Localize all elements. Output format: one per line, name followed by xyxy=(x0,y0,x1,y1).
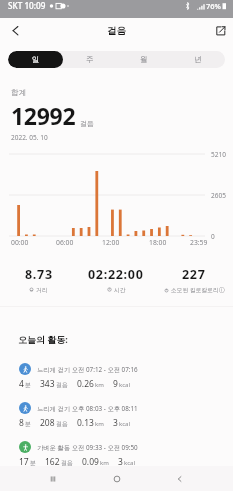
staticText: 12992 xyxy=(11,100,76,131)
staticText: 주 xyxy=(86,55,94,64)
staticText: 합계 xyxy=(11,88,26,97)
staticText: 걸음 xyxy=(56,381,68,389)
staticText: 02:22:00 xyxy=(88,266,144,283)
staticText: 년 xyxy=(194,55,202,64)
staticText: 9 xyxy=(113,378,118,390)
staticText: 17 xyxy=(19,456,29,468)
staticText: 2022. 05. 10 xyxy=(11,133,48,142)
button[interactable]: Open in new window xyxy=(211,20,229,38)
button[interactable]: 느리게 걷기 오후 08:03 - 오후 08:11 xyxy=(0,402,233,429)
staticText: 06:00 xyxy=(56,238,74,247)
staticText: kcal xyxy=(119,381,130,389)
staticText: km xyxy=(95,420,104,428)
staticText: 3 xyxy=(113,417,118,429)
button[interactable]: 느리게 걷기 오전 07:12 - 오전 07:16 xyxy=(0,363,233,390)
staticText: 느리게 걷기 오후 08:03 - 오후 08:11 xyxy=(37,404,138,413)
staticText: 4 xyxy=(19,378,24,390)
staticText: 걸음 xyxy=(61,459,73,467)
staticText: 18:00 xyxy=(149,238,167,247)
button[interactable]: 02:22:00 xyxy=(77,266,155,293)
staticText: 12:00 xyxy=(102,238,120,247)
staticText: SKT 10:09 xyxy=(8,0,46,11)
staticText: 0.09 xyxy=(82,456,99,468)
staticText: 0.13 xyxy=(77,417,94,429)
staticText: 0 xyxy=(211,232,215,241)
staticText: 76% xyxy=(206,1,221,11)
staticText: 오늘의 활동: xyxy=(18,333,68,345)
button[interactable]: Recent apps xyxy=(42,468,64,490)
button[interactable]: 일 xyxy=(8,51,63,68)
staticText: 걸음 xyxy=(107,25,126,37)
staticText: 일 xyxy=(32,55,40,64)
staticText: kcal xyxy=(119,420,130,428)
staticText: 분 xyxy=(25,381,31,389)
staticText: 23:59 xyxy=(190,238,208,247)
staticText: 3 xyxy=(118,456,123,468)
button[interactable]: 227 xyxy=(155,266,233,294)
staticText: 8.73 xyxy=(25,266,53,283)
staticText: 5210 xyxy=(211,150,226,159)
button[interactable]: 월 xyxy=(117,51,171,68)
staticText: 분 xyxy=(25,420,31,428)
staticText: 월 xyxy=(140,55,148,64)
staticText: 2605 xyxy=(211,191,226,200)
staticText: 거리 xyxy=(36,286,48,293)
staticText: 시간 xyxy=(114,286,126,293)
button[interactable]: Home xyxy=(106,468,128,490)
staticText: 343 xyxy=(40,378,55,390)
button[interactable]: Back xyxy=(4,20,24,40)
button[interactable]: Back xyxy=(169,468,191,490)
staticText: 걸음 xyxy=(80,119,94,128)
staticText: 208 xyxy=(40,417,55,429)
button[interactable]: 주 xyxy=(63,51,117,68)
staticText: 0.26 xyxy=(77,378,94,390)
button[interactable]: 8.73 xyxy=(0,266,77,293)
button[interactable]: 가벼운 활동 오전 09:33 - 오전 09:50 xyxy=(0,441,233,468)
staticText: 227 xyxy=(182,266,206,283)
staticText: km xyxy=(100,459,109,467)
staticText: 걸음 xyxy=(56,420,68,428)
staticText: 00:00 xyxy=(11,238,29,247)
staticText: 162 xyxy=(45,456,60,468)
staticText: kcal xyxy=(124,459,135,467)
button[interactable]: 년 xyxy=(171,51,225,68)
staticText: 8 xyxy=(19,417,24,429)
staticText: 소모된 킬로칼로리ⓘ xyxy=(171,286,225,294)
staticText: km xyxy=(95,381,104,389)
staticText: 느리게 걷기 오전 07:12 - 오전 07:16 xyxy=(37,365,138,374)
staticText: 분 xyxy=(30,459,36,467)
staticText: 가벼운 활동 오전 09:33 - 오전 09:50 xyxy=(37,443,138,452)
